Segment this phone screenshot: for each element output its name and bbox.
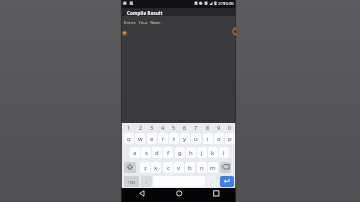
staticText: u	[194, 135, 198, 143]
staticText: 5	[172, 124, 176, 131]
button[interactable]: h	[186, 147, 196, 158]
staticText: y	[183, 135, 187, 143]
button[interactable]: e	[147, 133, 157, 144]
button[interactable]	[124, 162, 136, 173]
staticText: z	[144, 164, 147, 172]
staticText: 30%	[218, 1, 226, 6]
button[interactable]: ?123	[124, 176, 139, 187]
staticText: 6	[183, 124, 187, 131]
button[interactable]: c	[163, 162, 173, 173]
staticText: f	[167, 149, 170, 157]
staticText: ?123	[128, 180, 136, 184]
button[interactable]: j	[197, 147, 207, 158]
button[interactable]: y	[180, 133, 190, 144]
button[interactable]: 9	[213, 123, 224, 131]
staticText: e	[150, 135, 154, 143]
button[interactable]: g	[175, 147, 185, 158]
button[interactable]: 6	[179, 123, 190, 131]
staticText: w	[138, 135, 143, 143]
button[interactable]	[171, 188, 186, 201]
staticText: o	[217, 135, 221, 143]
staticText: s	[145, 149, 148, 157]
button[interactable]: s	[141, 147, 151, 158]
button[interactable]: ,	[141, 176, 152, 187]
button[interactable]: 4	[157, 123, 168, 131]
button[interactable]: l	[219, 147, 229, 158]
button[interactable]: 0	[224, 123, 235, 131]
staticText: v	[177, 164, 181, 172]
staticText: 19:06	[223, 1, 234, 7]
staticText: x	[154, 164, 158, 172]
staticText: h	[189, 149, 193, 157]
button[interactable]	[220, 162, 231, 173]
staticText: 9	[217, 124, 221, 131]
button[interactable]: .	[207, 176, 216, 187]
button[interactable]: u	[191, 133, 201, 144]
staticText: g	[178, 149, 182, 157]
button[interactable]: n	[197, 162, 207, 173]
button[interactable]	[133, 188, 148, 201]
button[interactable]: z	[140, 162, 150, 173]
staticText: 7	[194, 124, 198, 131]
staticText: .	[211, 178, 213, 185]
staticText: 8	[206, 124, 210, 131]
staticText: l	[223, 149, 225, 157]
button[interactable]: k	[208, 147, 218, 158]
staticText: k	[211, 149, 215, 157]
button[interactable]: 8	[202, 123, 213, 131]
button[interactable]: q	[124, 133, 134, 144]
staticText: 2	[139, 124, 143, 131]
staticText: ,	[146, 178, 148, 185]
staticText: Compile Result	[127, 10, 163, 16]
button[interactable]	[220, 176, 234, 187]
button[interactable]: 5	[168, 123, 179, 131]
staticText: p	[228, 135, 232, 143]
button[interactable]: b	[185, 162, 195, 173]
staticText: r	[162, 135, 165, 143]
staticText: a	[133, 149, 137, 157]
staticText: i	[207, 135, 209, 143]
button[interactable]: 3	[146, 123, 157, 131]
button[interactable]: 7	[190, 123, 201, 131]
staticText: m	[210, 164, 216, 172]
staticText: q	[127, 135, 131, 143]
staticText: 1	[127, 124, 131, 131]
button[interactable]: a	[130, 147, 140, 158]
button[interactable]: o	[214, 133, 224, 144]
button[interactable]: d	[152, 147, 162, 158]
button[interactable]: w	[135, 133, 145, 144]
button[interactable]: p	[225, 133, 235, 144]
staticText: t	[173, 135, 176, 143]
button[interactable]: m	[208, 162, 218, 173]
button[interactable]: v	[174, 162, 184, 173]
staticText: n	[200, 164, 204, 172]
button[interactable]: 2	[135, 123, 146, 131]
staticText: b	[188, 164, 192, 172]
button[interactable]: x	[151, 162, 161, 173]
button[interactable]	[209, 188, 224, 201]
button[interactable]: i	[203, 133, 213, 144]
staticText: Enter Your Name:	[124, 20, 163, 25]
button[interactable]: r	[158, 133, 168, 144]
button[interactable]: f	[163, 147, 173, 158]
staticText: c	[167, 164, 170, 172]
button[interactable]: t	[169, 133, 179, 144]
button[interactable]: 1	[123, 123, 134, 131]
staticText: 3	[150, 124, 154, 131]
staticText: j	[201, 149, 203, 157]
staticText: 0	[228, 124, 232, 131]
staticText: d	[155, 149, 159, 157]
staticText: 4	[161, 124, 165, 131]
